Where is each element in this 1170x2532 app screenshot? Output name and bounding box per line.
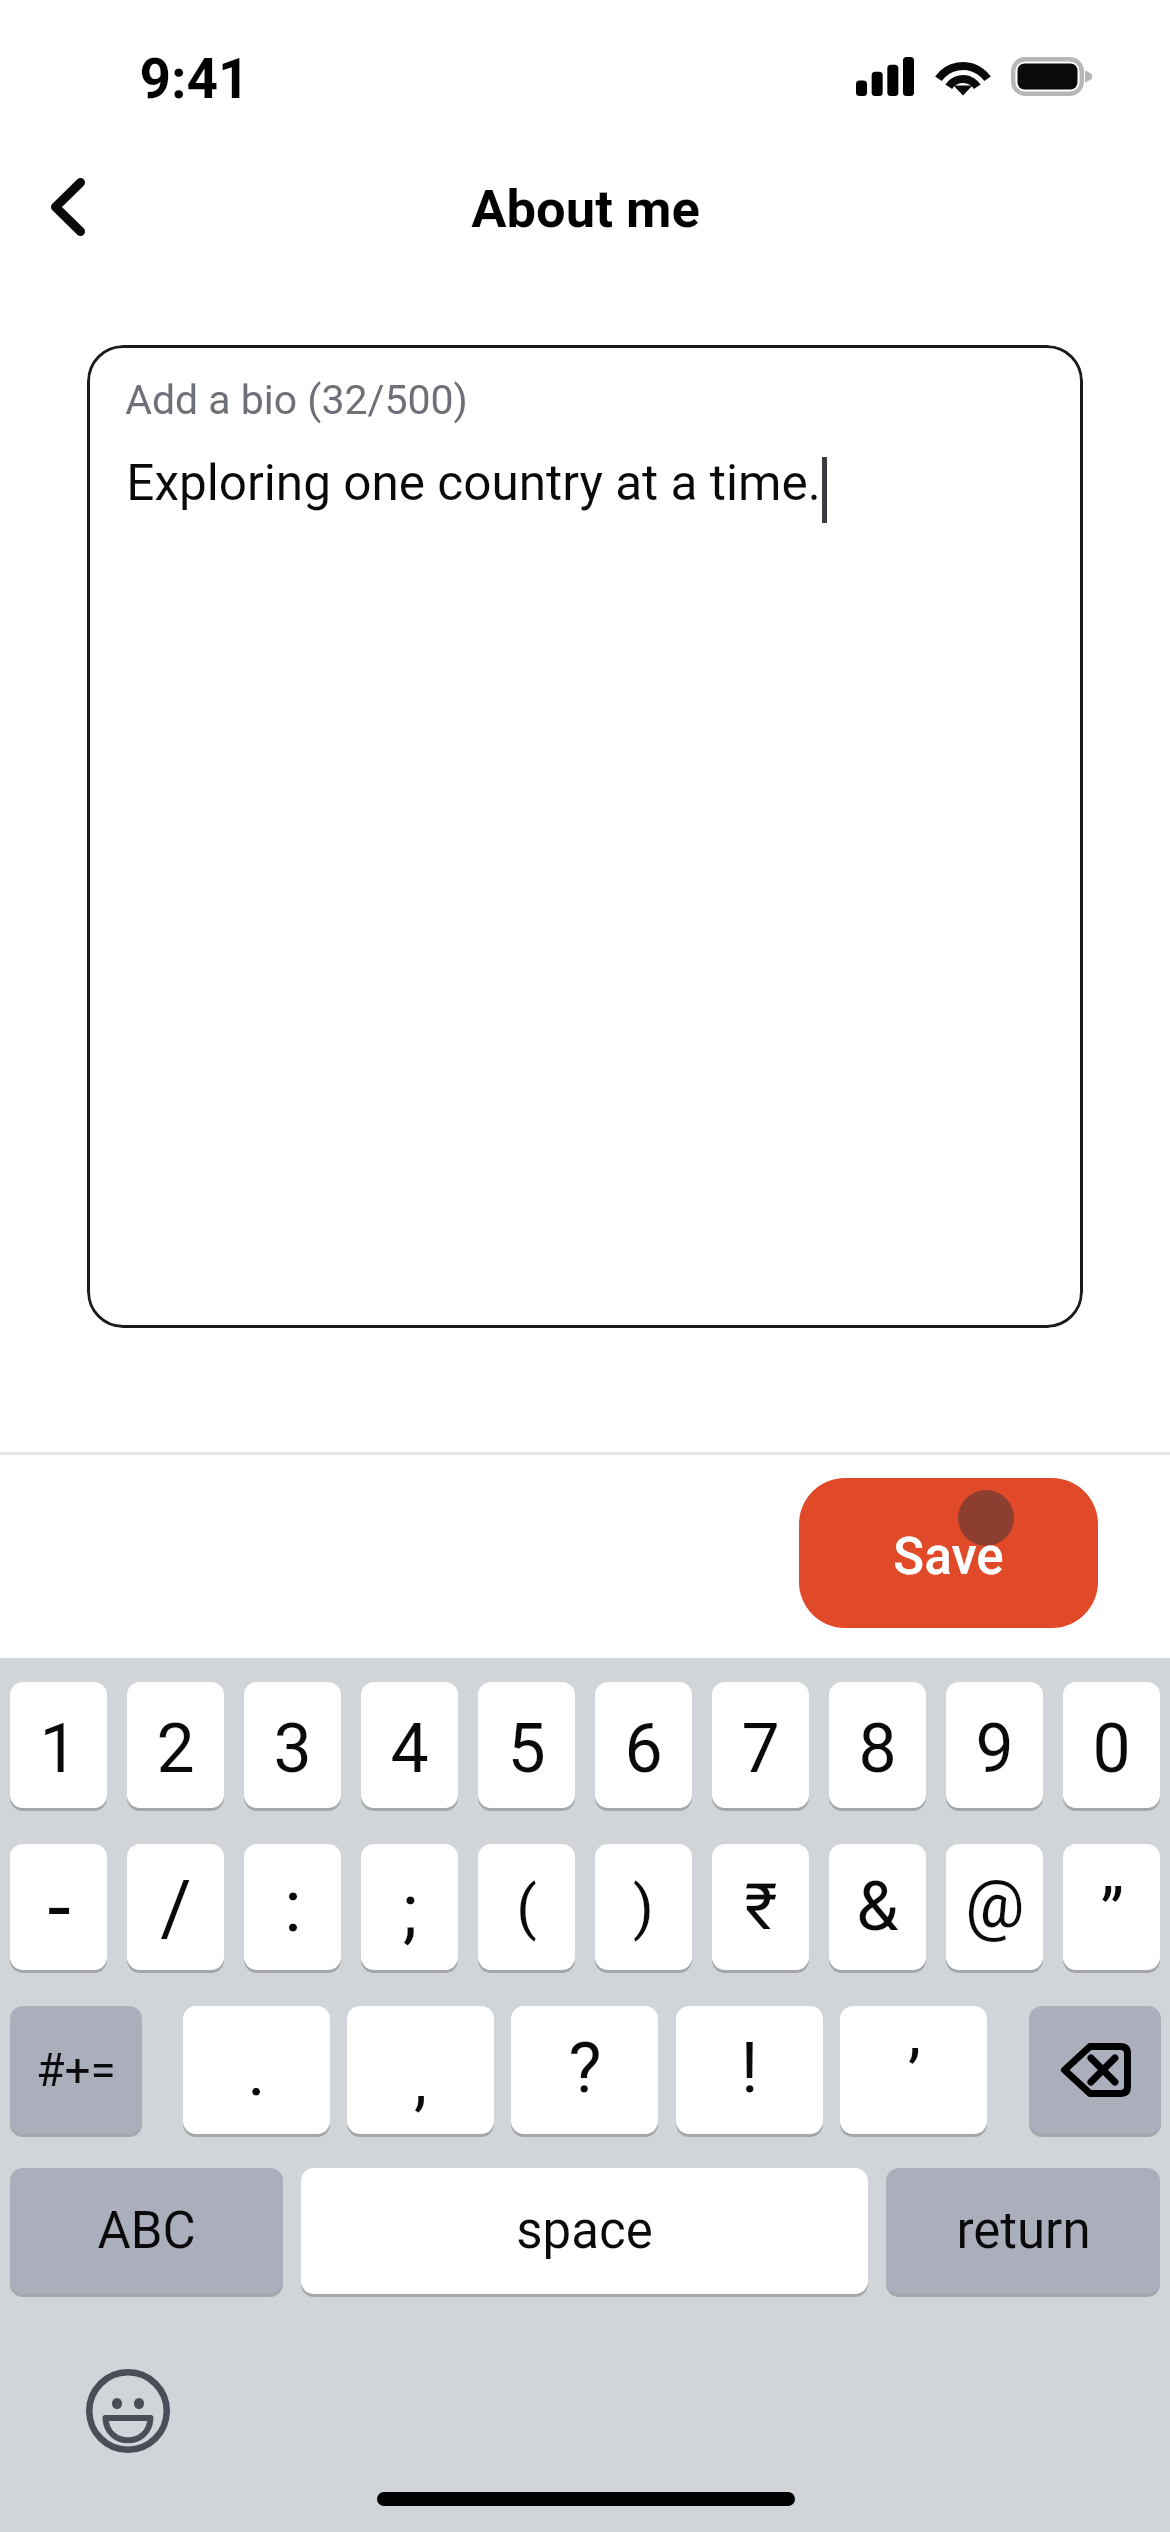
button[interactable]: ₹ xyxy=(712,1844,809,1970)
staticText: 1 xyxy=(39,1709,78,1789)
staticText: return xyxy=(956,2201,1091,2261)
staticText: #+= xyxy=(36,2043,116,2097)
staticText: ) xyxy=(633,1872,654,1942)
staticText: space xyxy=(516,2201,653,2261)
button[interactable]: 8 xyxy=(829,1682,926,1808)
button[interactable]: Add a bio (32/500) xyxy=(87,345,1083,1328)
staticText: ” xyxy=(1100,1875,1124,1952)
button[interactable]: ! xyxy=(676,2006,823,2134)
button[interactable]: & xyxy=(829,1844,926,1970)
button[interactable]: ’ xyxy=(840,2006,987,2134)
button[interactable]: 5 xyxy=(478,1682,575,1808)
staticText: Exploring one country at a time. xyxy=(126,454,821,512)
staticText: - xyxy=(47,1858,71,1956)
button[interactable]: 1 xyxy=(10,1682,107,1808)
button[interactable]: Emoji keyboard xyxy=(78,2361,178,2461)
staticText: ( xyxy=(516,1872,537,1942)
staticText: @ xyxy=(965,1866,1025,1943)
staticText: Add a bio (32/500) xyxy=(125,376,468,424)
button[interactable]: Back xyxy=(14,151,122,263)
button[interactable]: ; xyxy=(361,1844,458,1970)
staticText: ; xyxy=(402,1868,418,1952)
staticText: ! xyxy=(740,2027,759,2109)
button[interactable]: . xyxy=(183,2006,330,2134)
button[interactable]: , xyxy=(347,2006,494,2134)
staticText: Save xyxy=(893,1527,1004,1587)
staticText: 8 xyxy=(858,1709,897,1789)
staticText: 3 xyxy=(273,1709,312,1789)
button[interactable]: / xyxy=(127,1844,224,1970)
staticText: . xyxy=(247,2030,266,2112)
button[interactable]: space xyxy=(301,2168,868,2294)
staticText: 5 xyxy=(507,1709,546,1789)
staticText: & xyxy=(856,1867,899,1947)
button[interactable]: : xyxy=(244,1844,341,1970)
staticText: , xyxy=(414,2042,427,2119)
staticText: 9:41 xyxy=(139,47,250,111)
staticText: 9 xyxy=(975,1709,1014,1789)
staticText: ₹ xyxy=(744,1870,778,1945)
button[interactable]: 3 xyxy=(244,1682,341,1808)
button[interactable]: 9 xyxy=(946,1682,1043,1808)
staticText: 4 xyxy=(390,1709,429,1789)
staticText: 7 xyxy=(741,1709,780,1789)
button[interactable]: #+= xyxy=(10,2006,142,2134)
button[interactable]: Save xyxy=(799,1478,1098,1628)
button[interactable]: ABC xyxy=(10,2168,283,2294)
staticText: 2 xyxy=(156,1709,195,1789)
button[interactable]: ( xyxy=(478,1844,575,1970)
staticText: ? xyxy=(568,2027,602,2109)
staticText: About me xyxy=(471,178,700,240)
button[interactable]: @ xyxy=(946,1844,1043,1970)
button[interactable]: 6 xyxy=(595,1682,692,1808)
button[interactable]: ” xyxy=(1063,1844,1160,1970)
button[interactable]: Backspace xyxy=(1029,2006,1161,2134)
staticText: ’ xyxy=(907,2037,921,2114)
staticText: 0 xyxy=(1092,1709,1131,1789)
staticText: : xyxy=(284,1864,302,1948)
staticText: 6 xyxy=(624,1709,663,1789)
button[interactable]: 7 xyxy=(712,1682,809,1808)
button[interactable]: 4 xyxy=(361,1682,458,1808)
staticText: / xyxy=(160,1863,192,1952)
button[interactable]: - xyxy=(10,1844,107,1970)
button[interactable]: ) xyxy=(595,1844,692,1970)
button[interactable]: return xyxy=(886,2168,1160,2294)
button[interactable]: 0 xyxy=(1063,1682,1160,1808)
staticText: ABC xyxy=(97,2201,196,2261)
button[interactable]: 2 xyxy=(127,1682,224,1808)
button[interactable]: ? xyxy=(511,2006,658,2134)
